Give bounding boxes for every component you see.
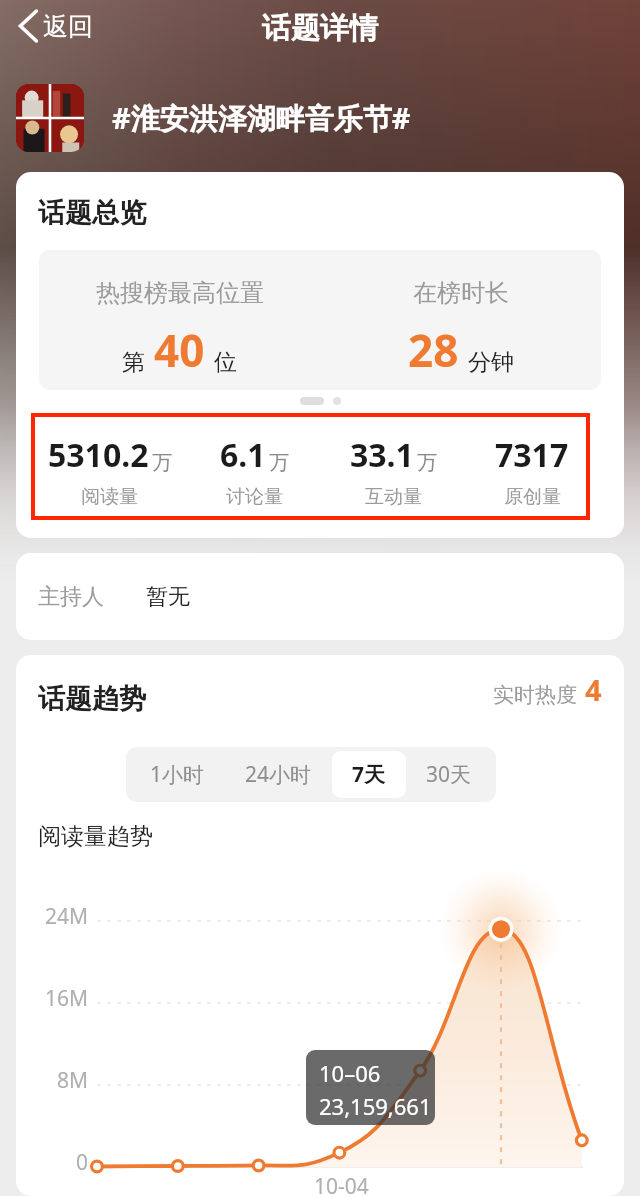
button[interactable]: 1小时 (130, 751, 225, 798)
staticText: 主持人 (38, 583, 104, 611)
staticText: 24M (45, 902, 89, 931)
staticText: 暂无 (146, 583, 190, 611)
staticText: 1小时 (150, 760, 205, 789)
staticText: #淮安洪泽湖畔音乐节# (112, 98, 411, 138)
staticText: 5310.2 (48, 433, 149, 477)
staticText: 第 (122, 348, 145, 377)
staticText: 0 (76, 1148, 89, 1177)
button[interactable]: 主持人 (38, 553, 624, 640)
staticText: 热搜榜最高位置 (96, 278, 264, 308)
staticText: 位 (214, 348, 237, 377)
staticText: 互动量 (365, 485, 422, 509)
staticText: 话题趋势 (38, 682, 146, 716)
staticText: 万 (417, 450, 437, 475)
button[interactable]: 7天 (332, 751, 406, 798)
staticText: 话题总览 (38, 196, 146, 230)
staticText: 30天 (426, 760, 472, 789)
staticText: 40 (154, 320, 205, 380)
staticText: 33.1 (350, 433, 414, 477)
staticText: 4 (585, 670, 602, 709)
staticText: 6.1 (220, 433, 266, 477)
staticText: 7天 (352, 760, 386, 789)
staticText: 分钟 (468, 348, 514, 377)
staticText: 23,159,661 (319, 1091, 432, 1121)
button[interactable]: 话题封面 (16, 84, 84, 152)
staticText: 28 (408, 320, 459, 380)
staticText: 在榜时长 (413, 278, 509, 308)
staticText: 10-04 (314, 1172, 369, 1196)
staticText: 万 (269, 450, 289, 475)
staticText: 10–06 (319, 1058, 381, 1088)
staticText: 原创量 (504, 485, 561, 509)
staticText: 讨论量 (226, 485, 283, 509)
staticText: 24小时 (245, 760, 312, 789)
staticText: 16M (45, 984, 89, 1013)
staticText: 万 (152, 450, 172, 475)
button[interactable]: 30天 (406, 751, 492, 798)
staticText: 阅读量 (81, 485, 138, 509)
button[interactable]: 24小时 (225, 751, 332, 798)
staticText: 返回 (43, 11, 93, 42)
staticText: 实时热度 (493, 682, 577, 708)
staticText: 话题详情 (262, 10, 378, 47)
staticText: 7317 (495, 433, 569, 477)
button[interactable]: 返回 (0, 0, 109, 52)
staticText: 阅读量趋势 (38, 822, 153, 851)
staticText: 8M (57, 1066, 89, 1095)
